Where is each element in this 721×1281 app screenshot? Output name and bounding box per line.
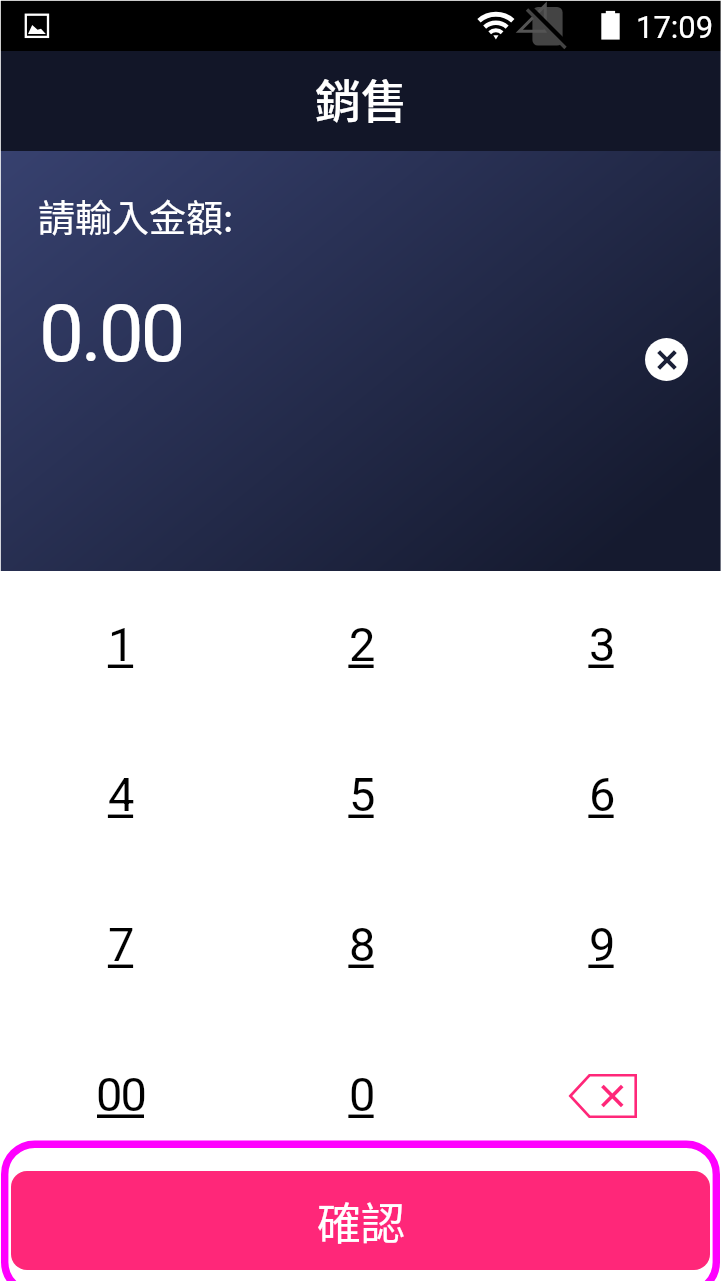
button[interactable]: 5 [241, 721, 481, 871]
staticText: 9 [589, 917, 614, 972]
button[interactable]: 1 [0, 571, 241, 721]
button[interactable]: 6 [481, 721, 721, 871]
staticText: 7 [108, 917, 133, 972]
button[interactable]: 3 [481, 571, 721, 721]
button[interactable]: Clear amount [645, 338, 688, 381]
button[interactable]: 4 [0, 721, 241, 871]
staticText: 6 [589, 767, 614, 822]
staticText: 2 [349, 617, 374, 672]
button[interactable]: 00 [0, 1021, 241, 1171]
staticText: 1 [108, 617, 133, 672]
button[interactable]: 確認 [11, 1171, 710, 1270]
staticText: 4 [108, 767, 133, 822]
button[interactable]: 7 [0, 871, 241, 1021]
button[interactable]: 0 [241, 1021, 481, 1171]
staticText: 5 [349, 767, 374, 822]
staticText: 0.00 [39, 287, 183, 381]
staticText: 8 [349, 917, 374, 972]
staticText: 銷售 [315, 65, 407, 132]
button[interactable]: 9 [481, 871, 721, 1021]
staticText: 00 [96, 1067, 145, 1122]
button[interactable]: Backspace [481, 1021, 721, 1171]
button[interactable]: 8 [241, 871, 481, 1021]
staticText: 請輸入金額: [38, 189, 234, 243]
other: Backspace [569, 1074, 637, 1118]
staticText: 0 [349, 1067, 374, 1122]
staticText: 17:09 [636, 9, 714, 45]
button[interactable]: 2 [241, 571, 481, 721]
staticText: 3 [589, 617, 614, 672]
staticText: 確認 [317, 1189, 405, 1253]
